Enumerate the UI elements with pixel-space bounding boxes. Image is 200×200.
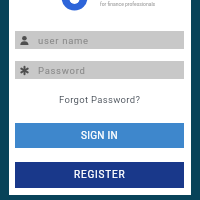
button[interactable]: Password [15,61,184,79]
staticText: user name [38,35,89,46]
staticText: Password [38,65,86,76]
staticText: REGISTER [74,169,126,181]
staticText: for finance professionals [100,1,156,7]
button[interactable]: Forgot Password? [9,94,191,105]
staticText: Forgot Password? [59,94,141,105]
button[interactable]: SIGN IN [15,123,184,148]
button[interactable]: REGISTER [15,162,184,188]
button[interactable]: user name [15,31,184,49]
staticText: SIGN IN [81,130,119,142]
